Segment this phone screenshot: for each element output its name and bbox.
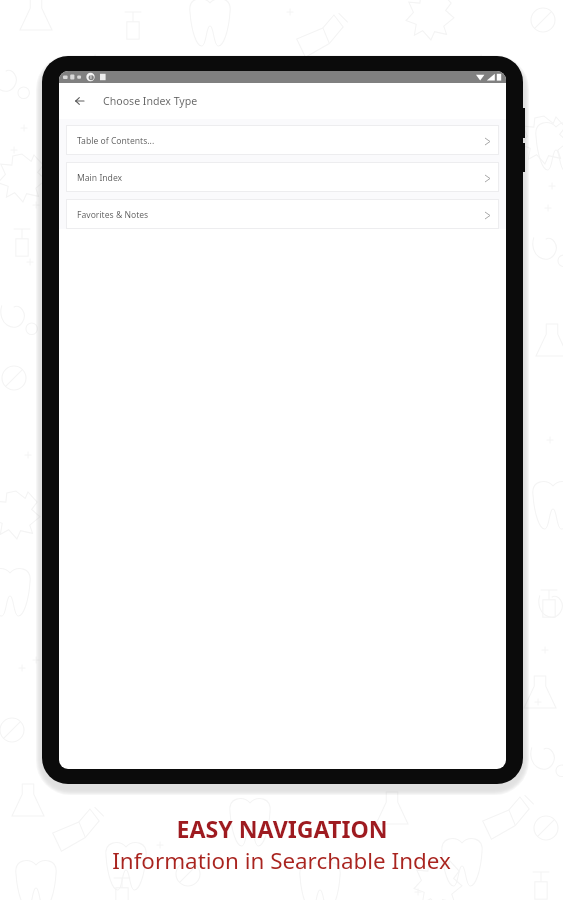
staticText: Choose Index Type: [103, 94, 198, 108]
staticText: Information in Searchable Index: [112, 845, 451, 876]
button[interactable]: Main Index: [66, 162, 499, 192]
staticText: Favorites & Notes: [77, 209, 149, 221]
staticText: EASY NAVIGATION: [176, 813, 388, 845]
button[interactable]: Back: [67, 89, 91, 113]
staticText: Table of Contents...: [77, 135, 155, 147]
button[interactable]: Table of Contents...: [66, 125, 499, 155]
staticText: Main Index: [77, 172, 123, 184]
button[interactable]: Favorites & Notes: [66, 199, 499, 229]
